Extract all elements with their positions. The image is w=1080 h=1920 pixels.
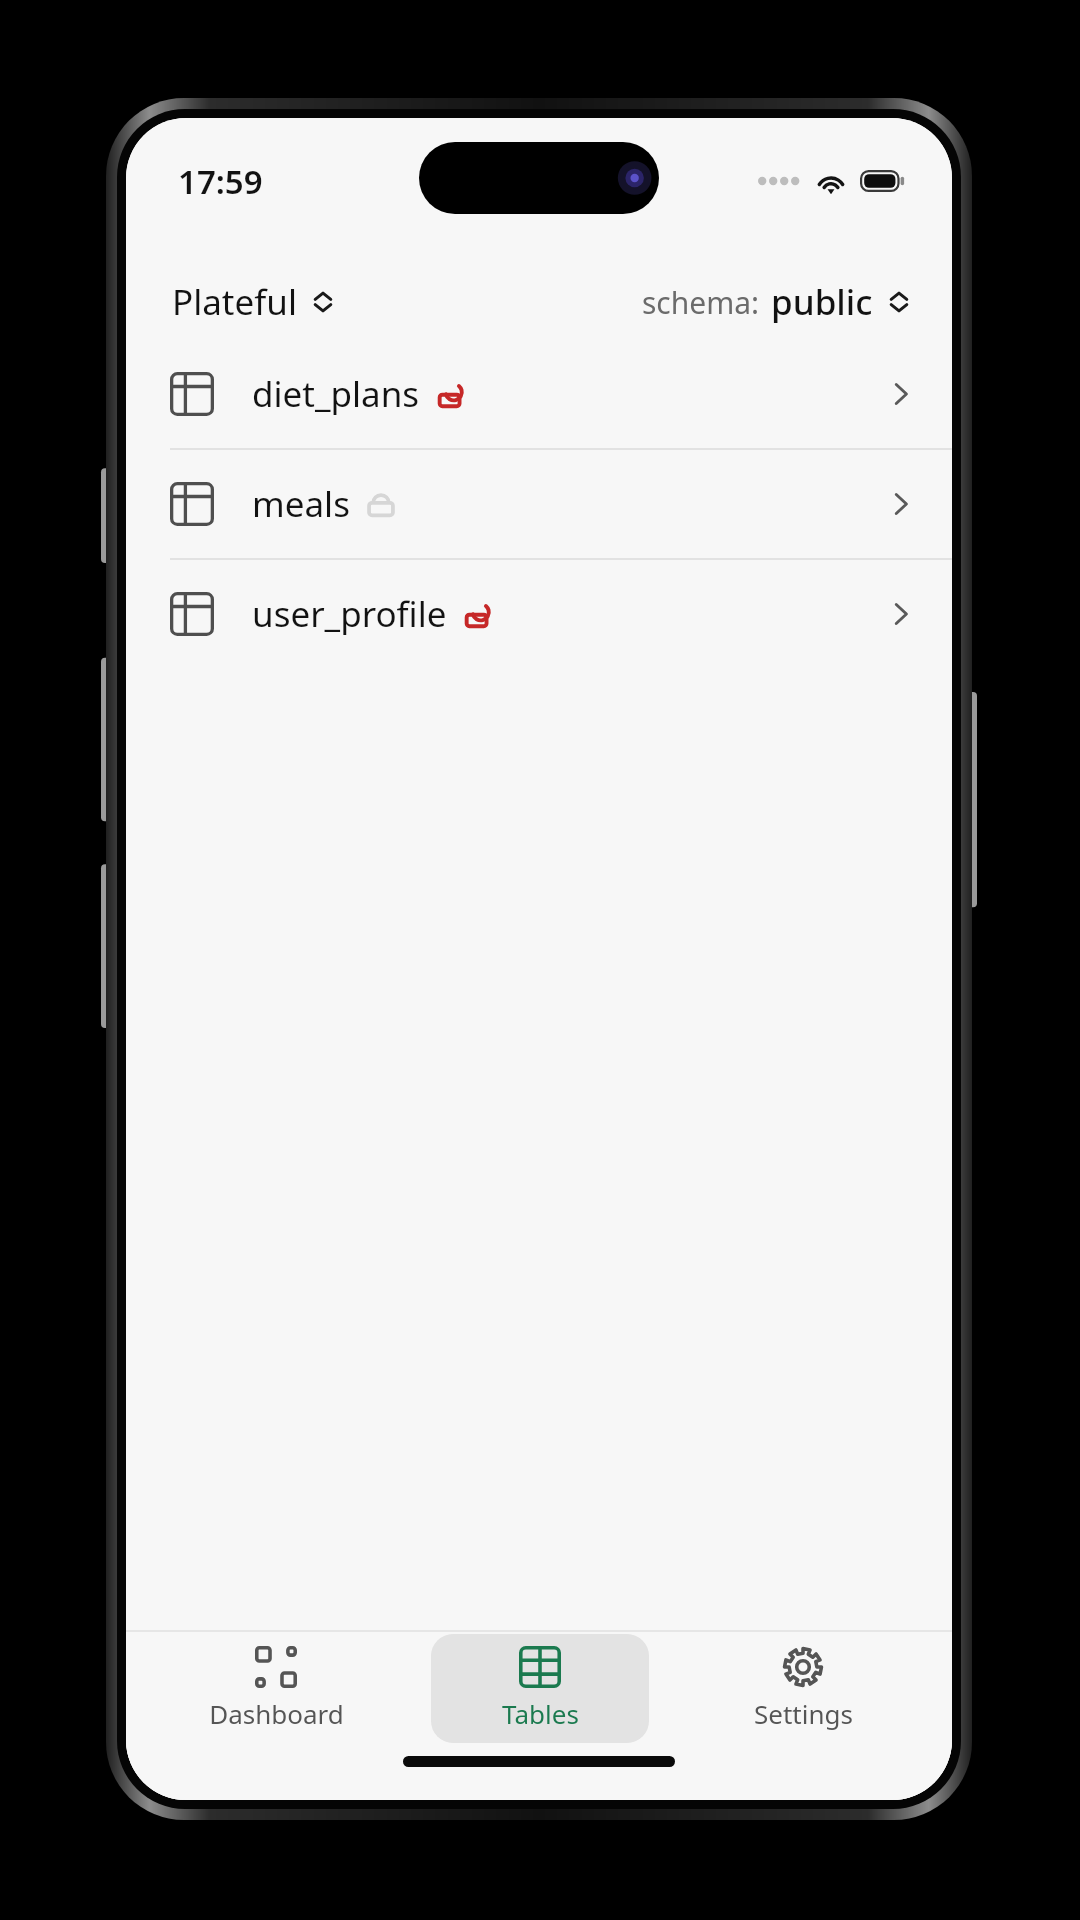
other: Settings	[782, 1646, 824, 1688]
button[interactable]: Settings	[694, 1634, 912, 1743]
staticText: public	[771, 278, 873, 326]
button[interactable]: user_profile	[126, 560, 952, 668]
staticText: diet_plans	[252, 370, 420, 418]
staticText: user_profile	[252, 590, 447, 638]
staticText: Plateful	[172, 278, 297, 326]
staticText: Dashboard	[209, 1696, 344, 1731]
button[interactable]: meals	[126, 450, 952, 558]
staticText: 17:59	[178, 159, 263, 204]
staticText: Settings	[754, 1696, 853, 1731]
button[interactable]: diet_plans	[126, 340, 952, 448]
staticText: Tables	[502, 1696, 579, 1731]
other: Dashboard	[255, 1646, 297, 1688]
button[interactable]: schema:	[642, 278, 912, 326]
staticText: schema:	[642, 282, 760, 323]
other: Tables	[519, 1646, 561, 1688]
staticText: meals	[252, 480, 350, 528]
button[interactable]: Plateful	[172, 278, 336, 326]
button[interactable]: Dashboard	[167, 1634, 385, 1743]
button[interactable]: Tables	[431, 1634, 649, 1743]
